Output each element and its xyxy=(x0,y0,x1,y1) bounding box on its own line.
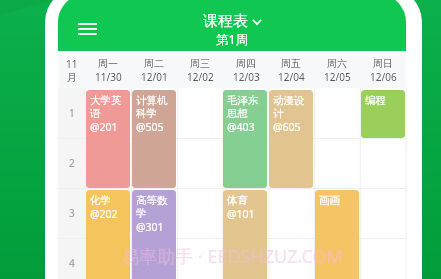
staticText: 2 xyxy=(69,156,75,170)
staticText: @403 xyxy=(227,120,255,134)
staticText: 计算机科学 xyxy=(136,94,174,120)
staticText: 月 xyxy=(67,71,77,84)
staticText: 12/01 xyxy=(141,70,168,84)
staticText: @202 xyxy=(90,207,118,221)
button[interactable]: 画画 xyxy=(315,190,359,279)
staticText: 12/06 xyxy=(370,70,397,84)
staticText: 周五 xyxy=(281,57,301,70)
button[interactable]: 周四 xyxy=(223,57,269,84)
button[interactable]: 周五 xyxy=(268,57,314,84)
staticText: 周三 xyxy=(190,57,210,70)
staticText: 1 xyxy=(69,106,75,120)
staticText: 11/30 xyxy=(95,70,122,84)
button[interactable]: 编程 xyxy=(361,90,405,138)
button[interactable]: 体育 xyxy=(223,190,267,279)
staticText: 编程 xyxy=(365,94,386,107)
button[interactable]: 周三 xyxy=(177,57,223,84)
button[interactable]: 动漫设计 xyxy=(269,90,313,188)
staticText: 课程表 xyxy=(203,12,248,31)
staticText: @301 xyxy=(136,220,164,234)
staticText: @101 xyxy=(227,207,255,221)
staticText: 周四 xyxy=(236,57,256,70)
button[interactable]: 周二 xyxy=(131,57,177,84)
button[interactable]: 大学英语 xyxy=(86,90,130,188)
button[interactable]: 周一 xyxy=(85,57,131,84)
staticText: 高等数学 xyxy=(136,194,174,220)
staticText: 周日 xyxy=(373,57,393,70)
staticText: 12/05 xyxy=(324,70,351,84)
staticText: 周一 xyxy=(98,57,118,70)
staticText: 4 xyxy=(69,256,75,270)
staticText: @505 xyxy=(136,120,164,134)
button[interactable]: 毛泽东思想 xyxy=(223,90,267,188)
button[interactable]: 高等数学 xyxy=(132,190,176,279)
staticText: 11 xyxy=(66,57,78,71)
button[interactable]: 周六 xyxy=(314,57,360,84)
staticText: 12/03 xyxy=(233,70,260,84)
staticText: 周二 xyxy=(144,57,164,70)
staticText: 易率助手 · EEDSHZUZ.COM xyxy=(121,244,343,269)
button[interactable]: 周日 xyxy=(360,57,406,84)
button[interactable]: 计算机科学 xyxy=(132,90,176,188)
staticText: 化学 xyxy=(90,194,111,207)
staticText: 大学英语 xyxy=(90,94,128,120)
button[interactable]: Menu xyxy=(70,16,104,42)
staticText: 12/04 xyxy=(278,70,305,84)
button[interactable]: 化学 xyxy=(86,190,130,279)
button[interactable]: 课程表 xyxy=(203,12,262,31)
staticText: @605 xyxy=(273,120,301,134)
staticText: @201 xyxy=(90,120,118,134)
staticText: 周六 xyxy=(327,57,347,70)
staticText: 第1周 xyxy=(216,31,249,48)
staticText: 画画 xyxy=(319,194,340,207)
staticText: 体育 xyxy=(227,194,248,207)
staticText: 3 xyxy=(69,206,75,220)
staticText: 12/02 xyxy=(187,70,214,84)
staticText: 动漫设计 xyxy=(273,94,311,120)
staticText: 毛泽东思想 xyxy=(227,94,265,120)
